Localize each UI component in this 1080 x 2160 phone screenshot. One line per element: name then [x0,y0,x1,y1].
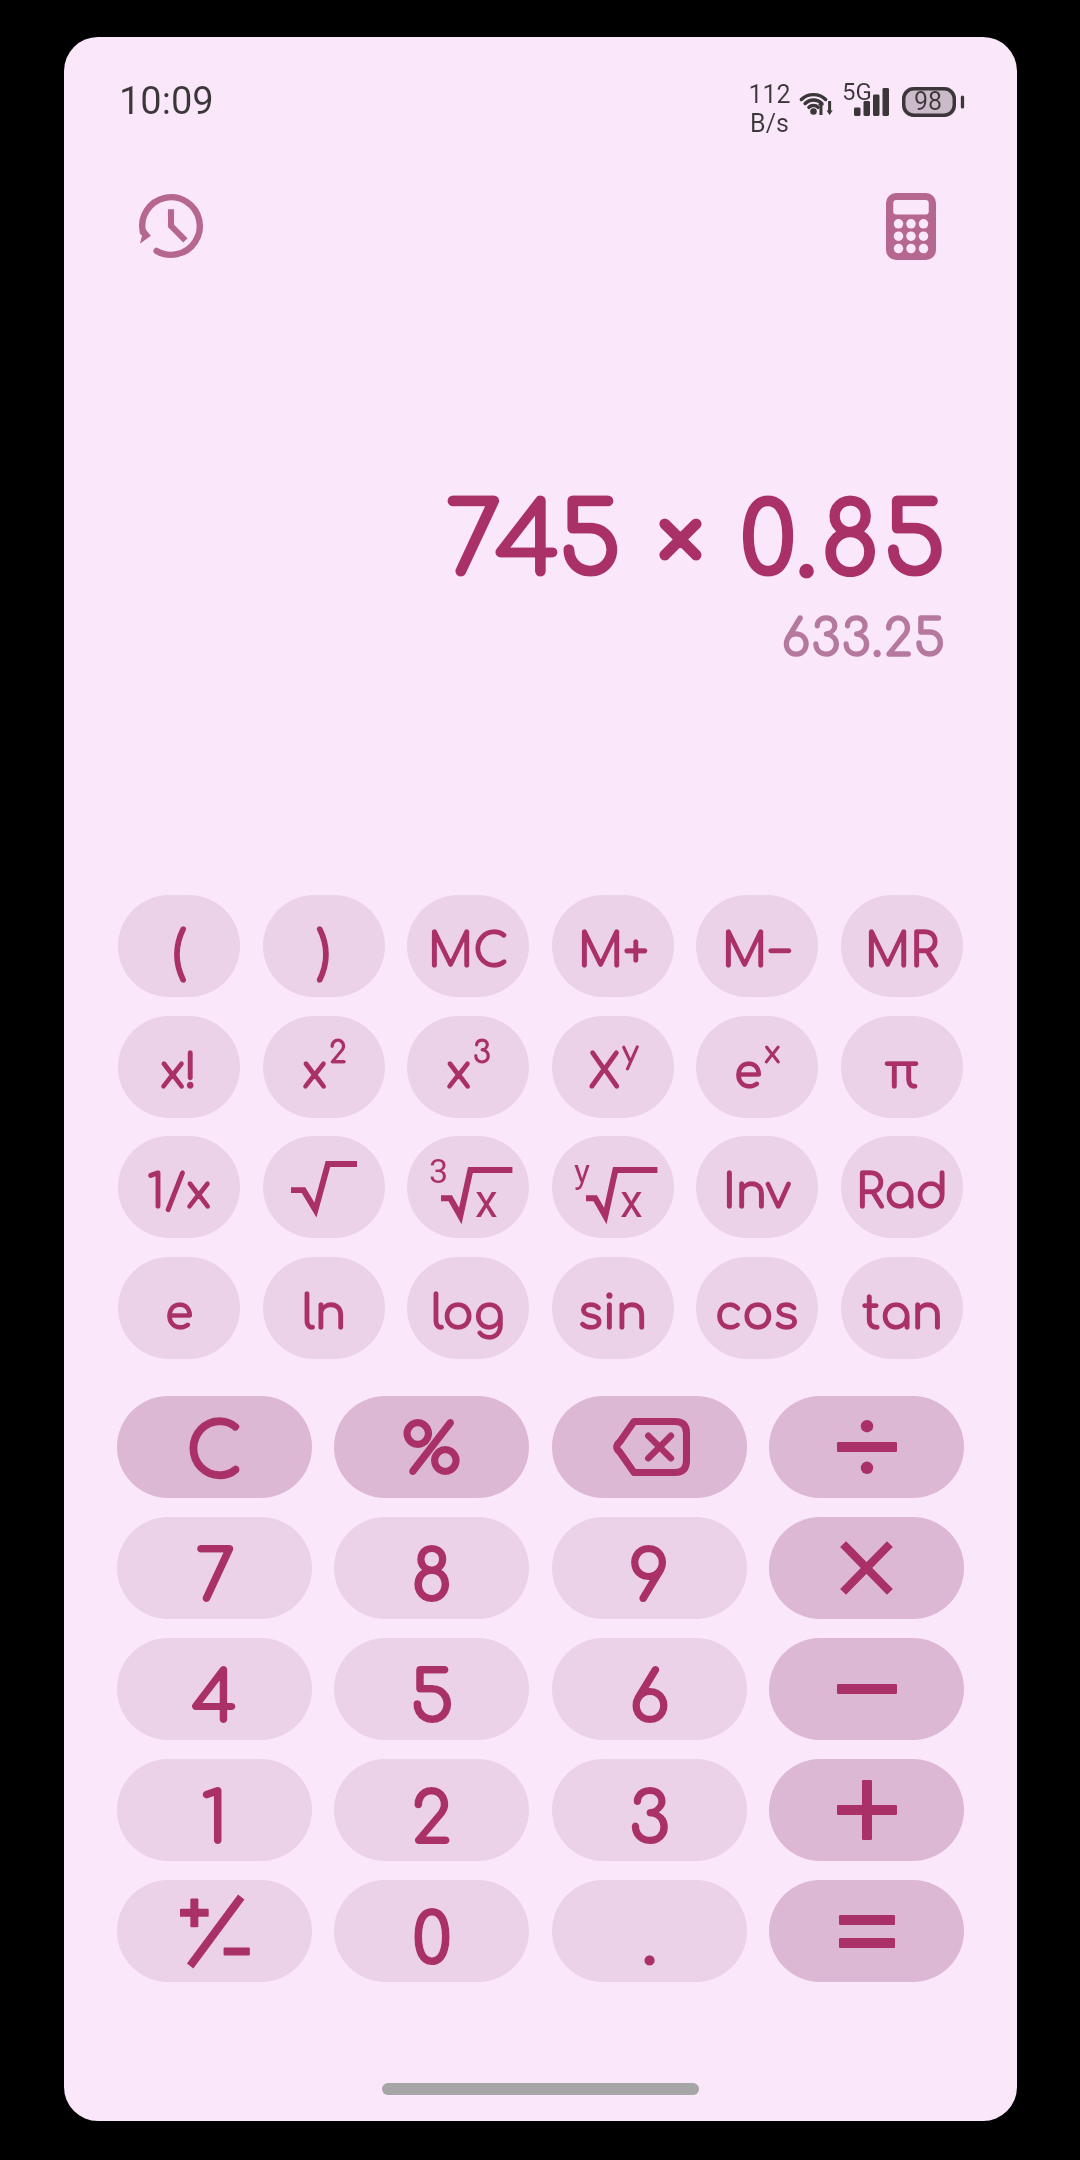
button[interactable]: 2 [334,1759,529,1861]
staticText: 6 [629,1660,670,1738]
staticText: 2 [329,1036,347,1070]
staticText: sin [578,1288,648,1339]
button[interactable]: Log [407,1257,529,1359]
staticText: M+ [578,926,649,977]
button[interactable]: Inverse [696,1136,818,1238]
staticText: M− [722,926,793,977]
button[interactable]: Natural log [263,1257,385,1359]
button[interactable]: Square [263,1016,385,1118]
staticText: 5G [842,78,872,106]
staticText: e [165,1288,194,1339]
staticText: x [446,1047,472,1098]
staticText: X [588,1047,621,1098]
staticText: 98 [914,87,943,116]
staticText: . [642,1902,658,1980]
button[interactable]: Close bracket [263,895,385,997]
button[interactable]: 8 [334,1517,529,1619]
staticText: 7 [195,1539,235,1617]
staticText: 2 [411,1781,452,1859]
button[interactable]: Switch calculator mode [848,163,974,289]
staticText: x [620,1174,643,1228]
staticText: % [402,1414,461,1490]
staticText: 10:09 [119,79,214,124]
staticText: C [186,1412,243,1495]
button[interactable]: Cube root [407,1136,529,1238]
button[interactable]: 5 [334,1638,529,1740]
staticText: 8 [411,1539,453,1617]
button[interactable]: Toggle sign [117,1880,312,1982]
button[interactable]: Cube [407,1016,529,1118]
button[interactable]: Clear [117,1396,312,1498]
button[interactable]: Equals [769,1880,964,1982]
button[interactable]: 3 [552,1759,747,1861]
button[interactable]: Memory recall [841,895,963,997]
button[interactable]: 1 [117,1759,312,1861]
staticText: 9 [629,1539,670,1617]
staticText: 633.25 [64,612,946,668]
staticText: 0 [412,1902,452,1980]
button[interactable]: Plus [769,1759,964,1861]
button[interactable]: Square root [263,1136,385,1238]
button[interactable]: Factorial [118,1016,240,1118]
staticText: x [475,1174,498,1228]
button[interactable]: 6 [552,1638,747,1740]
staticText: log [431,1288,505,1339]
button[interactable]: Euler number [118,1257,240,1359]
button[interactable]: Power [552,1016,674,1118]
button[interactable]: 4 [117,1638,312,1740]
button[interactable]: e to the power x [696,1016,818,1118]
staticText: ( [172,921,186,981]
staticText: x [764,1036,781,1070]
button[interactable]: Memory subtract [696,895,818,997]
staticText: MR [865,926,939,977]
button[interactable]: 9 [552,1517,747,1619]
staticText: MC [428,926,509,977]
staticText: tan [862,1288,943,1339]
staticText: 3 [629,1781,670,1859]
button[interactable]: Pi [841,1016,963,1118]
button[interactable]: Cosine [696,1257,818,1359]
button[interactable]: Divide [769,1396,964,1498]
staticText: ln [302,1288,347,1339]
button[interactable]: Backspace [552,1396,747,1498]
button[interactable]: Sine [552,1257,674,1359]
staticText: 3 [429,1151,449,1191]
staticText: y [622,1036,639,1070]
button[interactable]: Minus [769,1638,964,1740]
staticText: x! [160,1047,198,1098]
staticText: 4 [192,1660,238,1738]
staticText: 112 B/s [748,80,791,138]
button[interactable]: Nth root [552,1136,674,1238]
button[interactable]: Open bracket [118,895,240,997]
staticText: π [884,1047,920,1098]
button[interactable]: Memory add [552,895,674,997]
staticText: x [302,1047,328,1098]
button[interactable]: 0 [334,1880,529,1982]
staticText: Rad [856,1167,949,1218]
staticText: 5 [410,1660,454,1738]
button[interactable]: Radians [841,1136,963,1238]
button[interactable]: Tangent [841,1257,963,1359]
button[interactable]: History [108,163,234,289]
staticText: Inv [723,1167,791,1218]
staticText: ) [317,921,331,981]
staticText: 745 × 0.85 [64,487,949,598]
staticText: e [734,1047,763,1098]
button[interactable]: Decimal point [552,1880,747,1982]
staticText: 3 [473,1036,491,1070]
button[interactable]: Percent [334,1396,529,1498]
staticText: y [574,1151,591,1191]
button[interactable]: 7 [117,1517,312,1619]
button[interactable]: Memory clear [407,895,529,997]
staticText: 1 [201,1781,228,1859]
button[interactable]: Multiply [769,1517,964,1619]
staticText: cos [715,1288,799,1339]
button[interactable]: Reciprocal [118,1136,240,1238]
staticText: 1/x [147,1167,212,1218]
